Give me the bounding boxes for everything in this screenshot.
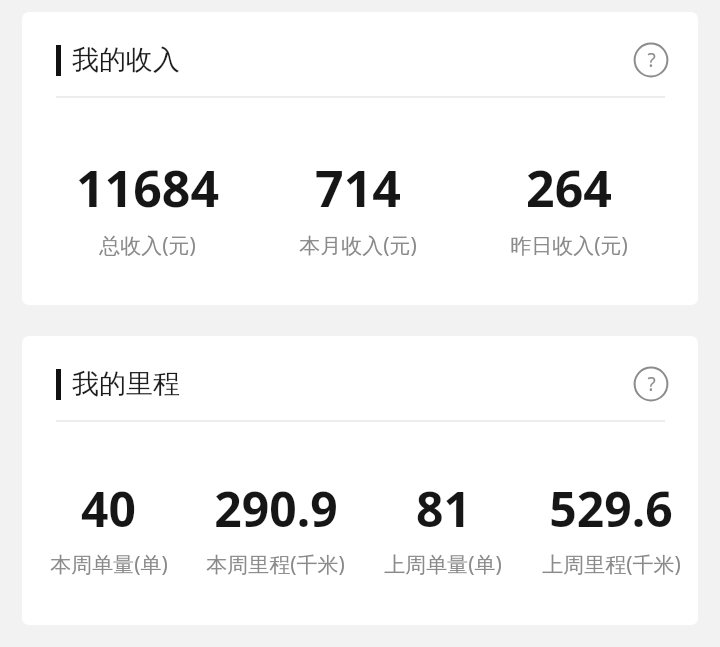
staticText: 290.9 <box>214 476 338 541</box>
staticText: 714 <box>315 154 401 222</box>
staticText: 81 <box>416 476 471 541</box>
staticText: 上周单量(单) <box>384 550 502 579</box>
button[interactable]: 我的里程 <box>22 356 631 412</box>
button[interactable]: 帮助 <box>631 40 671 80</box>
staticText: 本月收入(元) <box>299 231 417 260</box>
staticText: 本周里程(千米) <box>206 550 345 579</box>
staticText: 本周单量(单) <box>50 550 168 579</box>
staticText: ? <box>647 47 656 73</box>
staticText: 529.6 <box>549 476 673 541</box>
button[interactable]: 264 <box>463 154 674 260</box>
button[interactable]: 帮助 <box>631 364 671 404</box>
staticText: 我的收入 <box>72 43 180 77</box>
staticText: 264 <box>526 154 612 222</box>
staticText: 上周里程(千米) <box>542 550 681 579</box>
button[interactable]: 11684 <box>42 154 252 260</box>
button[interactable]: 40 <box>25 476 192 579</box>
staticText: 11684 <box>76 154 219 222</box>
staticText: 昨日收入(元) <box>510 231 628 260</box>
staticText: 我的里程 <box>72 367 180 401</box>
button[interactable]: 290.9 <box>192 476 359 579</box>
staticText: 总收入(元) <box>99 231 196 260</box>
button[interactable]: 81 <box>359 476 527 579</box>
staticText: 40 <box>81 476 136 541</box>
button[interactable]: 529.6 <box>527 476 695 579</box>
staticText: ? <box>647 371 656 397</box>
button[interactable]: 我的收入 <box>22 32 631 88</box>
button[interactable]: 714 <box>252 154 463 260</box>
